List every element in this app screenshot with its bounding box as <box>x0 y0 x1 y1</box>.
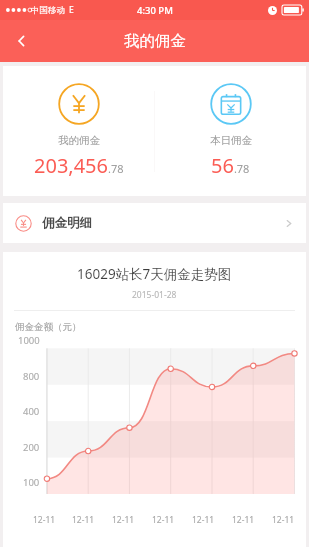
staticText: 佣金金额（元） <box>15 321 82 333</box>
button[interactable]: 我的佣金 <box>3 66 154 196</box>
staticText: 佣金明细 <box>42 215 92 231</box>
staticText: 本日佣金 <box>210 134 252 147</box>
staticText: 203,456.78 <box>34 152 124 179</box>
staticText: 12-11 <box>112 514 135 526</box>
staticText: 12-11 <box>72 514 95 526</box>
staticText: 12-11 <box>33 514 56 526</box>
staticText: 12-11 <box>232 514 255 526</box>
staticText: 200 <box>23 441 40 454</box>
staticText: 12-11 <box>272 514 295 526</box>
button[interactable]: 本日佣金 <box>155 66 306 196</box>
staticText: 16029站长7天佣金走势图 <box>77 265 232 283</box>
staticText: 中国移动 <box>31 5 65 16</box>
button[interactable]: Back <box>0 20 44 62</box>
button[interactable]: 佣金明细 <box>3 203 306 243</box>
staticText: 1000 <box>18 334 40 347</box>
staticText: 12-11 <box>192 514 215 526</box>
staticText: 800 <box>23 370 40 383</box>
staticText: 4:30 PM <box>137 4 173 17</box>
staticText: 100 <box>23 476 40 489</box>
staticText: 56.78 <box>211 152 250 179</box>
staticText: 我的佣金 <box>124 31 186 51</box>
staticText: E <box>69 4 74 16</box>
staticText: 我的佣金 <box>58 134 100 147</box>
staticText: 400 <box>23 405 40 418</box>
staticText: 12-11 <box>152 514 175 526</box>
staticText: 2015-01-28 <box>132 289 177 301</box>
